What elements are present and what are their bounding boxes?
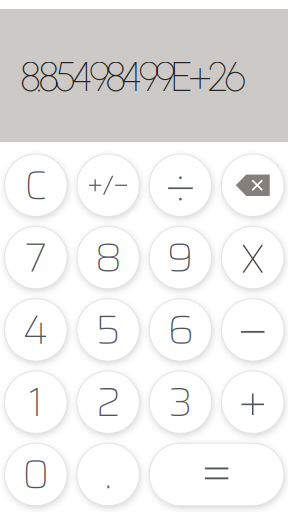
staticText: 8.85498499E+26 [20, 53, 246, 101]
staticText: 7 [25, 226, 47, 289]
button[interactable]: 6 [149, 299, 212, 361]
staticText: 4 [23, 298, 49, 361]
button[interactable]: 9 [149, 226, 212, 289]
button[interactable]: . [77, 443, 139, 506]
button[interactable]: 8 [77, 226, 139, 289]
staticText: 9 [167, 226, 193, 289]
staticText: 6 [167, 298, 193, 361]
staticText: 2 [96, 371, 120, 434]
button[interactable]: 3 [149, 371, 212, 433]
button[interactable]: Minus [221, 299, 284, 361]
button[interactable]: 4 [5, 299, 67, 361]
staticText: 5 [96, 298, 121, 361]
button[interactable]: 1 [5, 371, 67, 433]
button[interactable]: Delete [221, 154, 284, 216]
staticText: . [105, 443, 112, 506]
button[interactable]: Plus [221, 371, 284, 433]
staticText: 3 [168, 371, 192, 434]
button[interactable]: Equals [149, 443, 284, 506]
button[interactable]: 5 [77, 299, 139, 361]
button[interactable]: 7 [5, 226, 67, 289]
button[interactable]: 0 [5, 443, 67, 506]
staticText: C [24, 154, 47, 217]
button[interactable]: 2 [77, 371, 139, 433]
button[interactable]: Divide [149, 154, 212, 216]
button[interactable]: C [5, 154, 67, 216]
button[interactable]: Multiply [221, 226, 284, 289]
staticText: 1 [28, 371, 43, 434]
staticText: 8 [95, 226, 122, 289]
staticText: 0 [22, 443, 49, 506]
button[interactable]: Plus minus [77, 154, 139, 216]
